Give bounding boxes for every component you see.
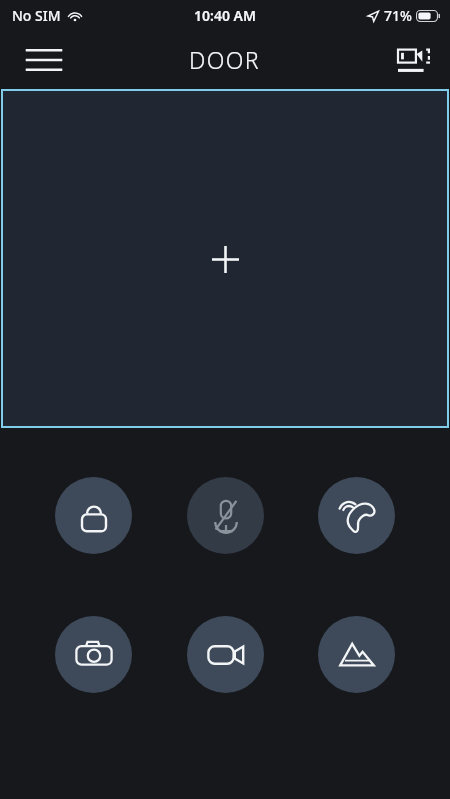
button[interactable]: Record video [187,616,264,693]
button[interactable]: Lock door [55,477,132,554]
staticText: 10:40 AM [194,6,256,25]
button[interactable]: Microphone muted [187,477,264,554]
button[interactable]: Menu [22,38,66,82]
button[interactable]: Record video [391,37,437,83]
button[interactable]: Call [318,477,395,554]
button[interactable]: Take photo [55,616,132,693]
staticText: No SIM [12,6,61,25]
staticText: 71% [384,6,412,25]
button[interactable]: Gallery [318,616,395,693]
staticText: DOOR [189,44,261,75]
button[interactable]: Add camera [198,232,252,286]
